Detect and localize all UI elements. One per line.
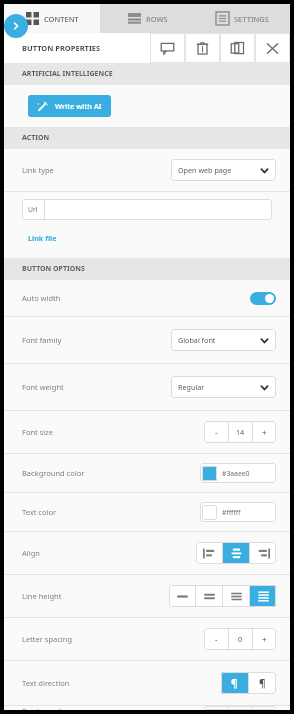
- button[interactable]: Font size: [4, 411, 290, 453]
- staticText: Border radius: [22, 706, 71, 710]
- button[interactable]: Font weight: [4, 364, 290, 410]
- staticText: Open web page: [178, 165, 232, 175]
- button[interactable]: Increase: [253, 628, 276, 650]
- button[interactable]: Left to right: [221, 672, 248, 694]
- button[interactable]: Line height 3: [223, 585, 249, 607]
- staticText: 4: [238, 706, 243, 710]
- button[interactable]: Write with AI: [28, 95, 111, 117]
- button[interactable]: Border radius: [4, 706, 290, 710]
- button[interactable]: Text direction: [4, 661, 290, 705]
- staticText: SETTINGS: [234, 14, 269, 24]
- staticText: Font size: [22, 427, 54, 437]
- staticText: Text color: [22, 507, 57, 517]
- staticText: CONTENT: [44, 14, 79, 24]
- staticText: 14: [236, 427, 245, 437]
- staticText: Link type: [22, 165, 54, 175]
- button[interactable]: Url: [22, 199, 272, 220]
- button[interactable]: 14: [229, 421, 252, 443]
- button[interactable]: Align center: [223, 542, 249, 564]
- button[interactable]: Increase: [253, 421, 276, 443]
- button[interactable]: Text color: [4, 493, 290, 531]
- button[interactable]: Link file: [28, 233, 57, 243]
- button[interactable]: ROWS: [100, 4, 195, 33]
- button[interactable]: Line height: [4, 575, 290, 617]
- button[interactable]: Line height 2: [196, 585, 222, 607]
- button[interactable]: Comment: [150, 33, 185, 63]
- staticText: BUTTON OPTIONS: [22, 264, 85, 274]
- staticText: BUTTON PROPERTIES: [22, 43, 101, 53]
- staticText: ¶: [231, 676, 238, 690]
- staticText: ¶: [259, 676, 266, 690]
- staticText: Line height: [22, 591, 62, 601]
- button[interactable]: Increase: [253, 706, 276, 710]
- staticText: Align: [22, 548, 40, 558]
- button[interactable]: Duplicate: [220, 33, 255, 63]
- staticText: ARTIFICIAL INTELLIGENCE: [22, 69, 113, 79]
- staticText: Global font: [178, 335, 216, 345]
- button[interactable]: Decrease: [204, 421, 228, 443]
- button[interactable]: CONTENT: [4, 4, 100, 33]
- staticText: Text direction: [22, 678, 70, 688]
- staticText: Font weight: [22, 382, 64, 392]
- staticText: Auto width: [22, 293, 61, 303]
- staticText: Regular: [178, 382, 205, 392]
- button[interactable]: Auto width: [4, 280, 290, 316]
- staticText: Link file: [28, 233, 57, 243]
- button[interactable]: Delete: [185, 33, 220, 63]
- button[interactable]: Global font: [171, 329, 276, 351]
- button[interactable]: Letter spacing: [4, 618, 290, 660]
- button[interactable]: Link type: [4, 149, 290, 191]
- staticText: 0: [238, 634, 243, 644]
- button[interactable]: Font family: [4, 317, 290, 363]
- staticText: +: [262, 427, 267, 438]
- staticText: ACTION: [22, 133, 50, 143]
- staticText: Font family: [22, 335, 62, 345]
- staticText: +: [262, 706, 267, 710]
- button[interactable]: 0: [229, 628, 252, 650]
- staticText: Write with AI: [55, 101, 102, 111]
- staticText: -: [215, 634, 218, 645]
- button[interactable]: Open web page: [171, 159, 276, 181]
- button[interactable]: SETTINGS: [195, 4, 290, 33]
- button[interactable]: Regular: [171, 376, 276, 398]
- button[interactable]: Line height 1: [169, 585, 195, 607]
- staticText: +: [262, 634, 267, 645]
- button[interactable]: Close: [255, 33, 290, 63]
- button[interactable]: Decrease: [204, 706, 228, 710]
- button[interactable]: Align left: [196, 542, 222, 564]
- staticText: Letter spacing: [22, 634, 73, 644]
- staticText: ROWS: [146, 14, 168, 24]
- staticText: Url: [28, 205, 38, 214]
- button[interactable]: Right to left: [249, 672, 276, 694]
- button[interactable]: Auto width toggle: [250, 292, 276, 305]
- staticText: Background color: [22, 468, 85, 478]
- staticText: #3aaee0: [222, 469, 250, 478]
- button[interactable]: Align: [4, 532, 290, 574]
- button[interactable]: #ffffff: [200, 502, 276, 522]
- button[interactable]: #3aaee0: [200, 463, 276, 483]
- button[interactable]: Decrease: [204, 628, 228, 650]
- button[interactable]: Background color: [4, 454, 290, 492]
- staticText: #ffffff: [222, 508, 241, 517]
- button[interactable]: Line height 4: [250, 585, 276, 607]
- staticText: -: [215, 427, 218, 438]
- button[interactable]: 4: [229, 706, 252, 710]
- button[interactable]: Align right: [250, 542, 276, 564]
- button[interactable]: Collapse panel: [4, 14, 28, 38]
- staticText: -: [215, 706, 218, 710]
